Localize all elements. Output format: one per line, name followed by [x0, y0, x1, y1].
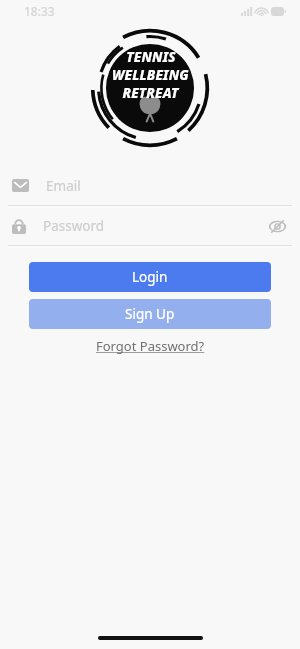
button[interactable]: Sign Up	[29, 299, 271, 329]
staticText: Login	[132, 268, 168, 286]
button[interactable]: Email	[0, 166, 300, 205]
button[interactable]: Password	[0, 206, 300, 245]
staticText: TENNIS	[126, 48, 176, 66]
staticText: RETREAT	[122, 84, 179, 102]
staticText: Password	[43, 217, 266, 235]
staticText: 18:33	[24, 3, 55, 19]
staticText: Forgot Password?	[96, 337, 205, 355]
staticText: Sign Up	[125, 305, 175, 323]
staticText: Email	[46, 177, 288, 195]
staticText: WELLBEING	[112, 66, 189, 84]
button[interactable]: Forgot Password?	[90, 335, 211, 357]
button[interactable]: Show password	[266, 215, 288, 237]
button[interactable]: Login	[29, 262, 271, 292]
